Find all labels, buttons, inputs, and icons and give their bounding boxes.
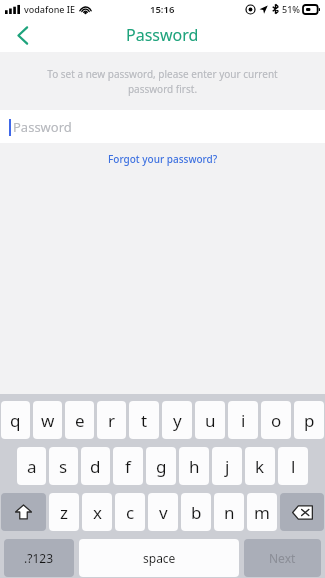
button[interactable]: o [261,401,291,439]
button[interactable]: Shift [1,493,46,531]
button[interactable]: t [129,401,159,439]
staticText: m [254,501,270,524]
staticText: q [10,409,21,432]
button[interactable]: n [214,493,244,531]
button[interactable]: Back [0,18,44,52]
button[interactable]: Backspace [280,493,324,531]
button[interactable]: .?123 [4,539,74,577]
staticText: vodafone IE [24,3,76,15]
button[interactable]: l [278,447,308,485]
staticText: t [141,409,148,432]
staticText: j [225,455,230,478]
staticText: Forgot your password? [108,152,218,166]
staticText: k [255,455,265,478]
button[interactable]: Password [0,110,325,143]
staticText: o [271,409,282,432]
button[interactable]: x [82,493,112,531]
button[interactable]: i [228,401,258,439]
staticText: c [126,501,135,524]
button[interactable]: b [181,493,211,531]
button[interactable]: y [162,401,192,439]
button[interactable]: s [49,447,78,485]
staticText: s [59,455,68,478]
staticText: b [191,501,202,524]
staticText: d [90,455,101,478]
button[interactable]: p [294,401,324,439]
staticText: e [75,409,85,432]
staticText: f [125,455,131,478]
button[interactable]: Forgot your password? [100,149,226,169]
staticText: 15:16 [150,3,175,16]
button[interactable]: d [81,447,110,485]
staticText: To set a new password, please enter your… [38,67,287,96]
button[interactable]: g [146,447,176,485]
button[interactable]: h [179,447,209,485]
button[interactable]: c [115,493,145,531]
button[interactable]: f [113,447,143,485]
staticText: .?123 [24,550,54,566]
button[interactable]: w [33,401,62,439]
button[interactable]: space [79,539,239,577]
button[interactable]: u [195,401,225,439]
button[interactable]: z [49,493,79,531]
button[interactable]: m [247,493,277,531]
button[interactable]: j [212,447,242,485]
staticText: Password [126,24,199,46]
button[interactable]: e [65,401,94,439]
staticText: r [108,409,116,432]
button[interactable]: q [1,401,30,439]
button[interactable]: v [148,493,178,531]
button[interactable]: k [245,447,275,485]
staticText: a [27,455,37,478]
staticText: space [143,550,176,566]
staticText: u [205,409,216,432]
button[interactable]: r [97,401,126,439]
staticText: p [304,409,315,432]
staticText: g [156,455,167,478]
button[interactable]: Next [244,539,321,577]
staticText: x [93,501,102,524]
staticText: Next [269,550,296,566]
staticText: v [159,501,168,524]
staticText: y [173,409,182,432]
staticText: n [224,501,235,524]
staticText: z [60,501,68,524]
button[interactable]: a [17,447,46,485]
staticText: 51% [282,3,300,15]
staticText: i [241,409,246,432]
staticText: Password [13,118,72,136]
staticText: l [291,455,296,478]
staticText: w [41,409,55,432]
staticText: h [189,455,200,478]
